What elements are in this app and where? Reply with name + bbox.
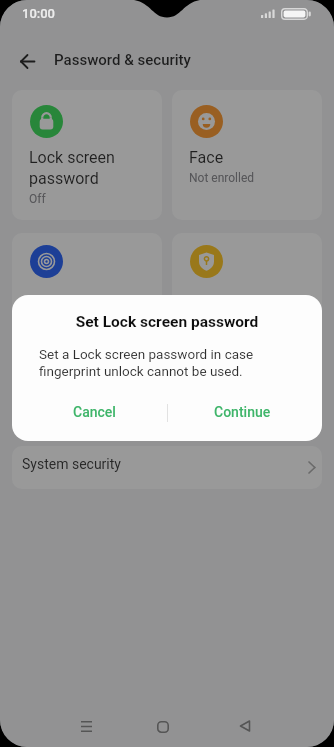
button[interactable]: Lock screen password xyxy=(12,90,162,220)
button[interactable] xyxy=(81,721,92,732)
staticText: Lock screen password xyxy=(29,148,115,188)
staticText: System security xyxy=(22,456,121,472)
button[interactable] xyxy=(239,720,251,732)
staticText: Not enrolled xyxy=(189,171,255,185)
staticText: Off xyxy=(29,192,46,206)
staticText: 10:00 xyxy=(22,6,56,21)
staticText: Cancel xyxy=(73,404,116,420)
button[interactable] xyxy=(172,233,322,363)
staticText: Face xyxy=(189,148,224,167)
staticText: Continue xyxy=(214,404,271,420)
button[interactable] xyxy=(157,721,169,733)
button[interactable]: Face xyxy=(172,90,322,220)
button[interactable] xyxy=(12,233,162,363)
staticText: Set Lock screen password xyxy=(12,313,322,331)
staticText: Set a Lock screen password in case finge… xyxy=(39,346,254,380)
button[interactable]: Cancel xyxy=(24,395,164,429)
button[interactable] xyxy=(20,54,35,69)
staticText: Password & security xyxy=(54,51,191,69)
button[interactable]: Continue xyxy=(172,395,312,429)
button[interactable]: System security xyxy=(12,446,322,489)
